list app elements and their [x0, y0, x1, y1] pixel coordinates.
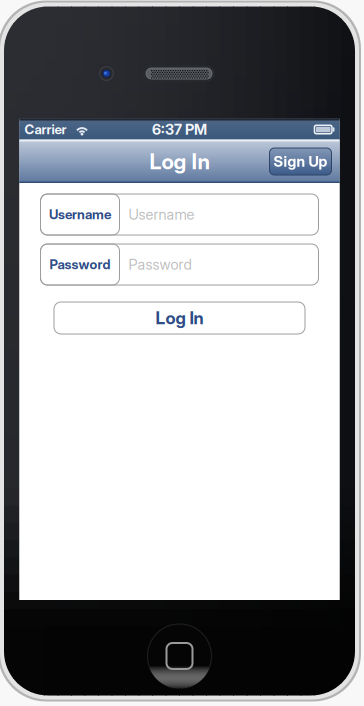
staticText: Carrier	[24, 121, 66, 137]
staticText: Log In	[155, 307, 203, 328]
staticText: Password	[128, 256, 191, 273]
staticText: 6:37 PM	[152, 121, 207, 138]
staticText: Username	[49, 206, 111, 222]
button[interactable]: Log In	[54, 302, 305, 334]
staticText: Log In	[149, 149, 209, 174]
staticText: Username	[128, 206, 194, 223]
button[interactable]: Sign Up	[269, 148, 331, 175]
staticText: Password	[49, 256, 110, 272]
staticText: Sign Up	[273, 153, 327, 170]
